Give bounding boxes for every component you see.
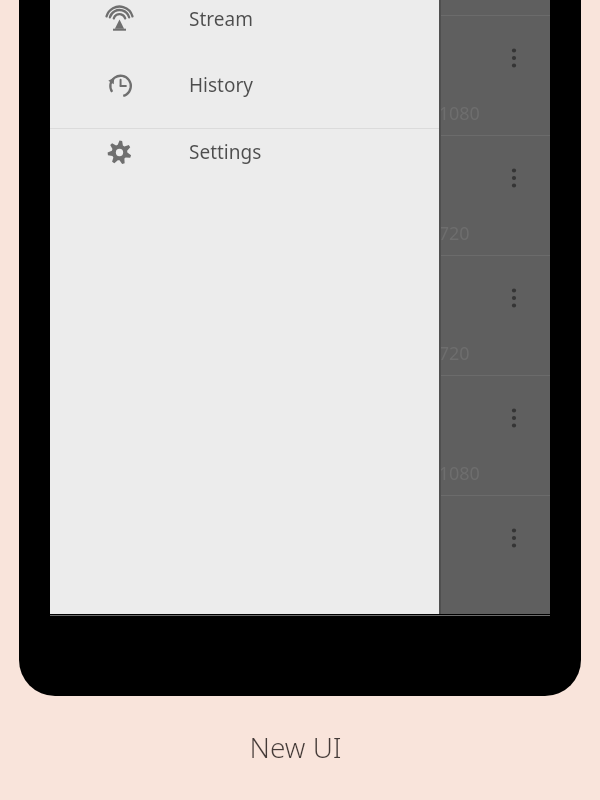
button[interactable]: More options [490, 154, 538, 202]
button[interactable]: a.m… [50, 136, 550, 256]
button[interactable]: تأمل ه [50, 0, 550, 16]
button[interactable]: Settings [50, 129, 439, 175]
button[interactable]: mp4 [50, 256, 550, 376]
button[interactable]: More options [490, 514, 538, 562]
staticText: 1280x720 [388, 221, 470, 246]
button[interactable]: er To [50, 16, 550, 136]
staticText: 1920x1080 [388, 101, 480, 126]
other: History [106, 72, 133, 99]
staticText: New UI [249, 728, 342, 766]
staticText: 1280x720 [388, 341, 470, 366]
other: Settings [106, 139, 133, 166]
button[interactable]: History [50, 52, 439, 118]
staticText: 1920x1080 [388, 0, 480, 6]
staticText: Settings [189, 139, 262, 165]
button[interactable]: More options [490, 34, 538, 82]
button[interactable]: More options [490, 274, 538, 322]
button[interactable]: More options [490, 394, 538, 442]
other: Stream [106, 6, 133, 33]
staticText: History [189, 72, 253, 98]
button[interactable]: Intr… [50, 376, 550, 496]
button[interactable]: More options [50, 496, 550, 616]
button[interactable]: Stream [50, 0, 439, 52]
staticText: Stream [189, 6, 253, 32]
staticText: 1920x1080 [388, 461, 480, 486]
